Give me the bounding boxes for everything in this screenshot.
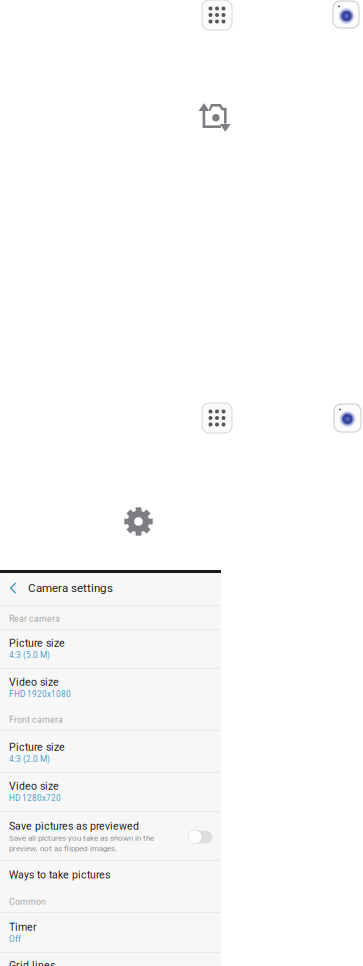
button[interactable]: Video size (0, 669, 221, 707)
staticText: Video size (9, 780, 59, 792)
staticText: Video size (9, 676, 59, 688)
staticText: Camera settings (28, 581, 113, 595)
button[interactable]: Ways to take pictures (0, 861, 221, 889)
staticText: Save pictures as previewed (9, 820, 139, 832)
staticText: HD 1280x720 (9, 793, 61, 803)
button[interactable]: Video size (0, 773, 221, 812)
staticText: 4:3 (5.0 M) (9, 650, 50, 660)
staticText: Common (9, 897, 46, 907)
staticText: Picture size (9, 741, 65, 753)
staticText: Picture size (9, 637, 65, 649)
button[interactable]: Save pictures as previewed (0, 812, 221, 861)
staticText: Timer (9, 921, 37, 933)
staticText: Grid lines (9, 959, 55, 966)
button[interactable]: Camera settings (0, 573, 221, 605)
staticText: Save all pictures you take as shown in t… (9, 833, 154, 843)
staticText: Rear camera (9, 614, 60, 624)
button[interactable]: Picture size (0, 630, 221, 669)
staticText: Off (9, 934, 21, 944)
staticText: preview, not as flipped images. (9, 844, 117, 853)
staticText: FHD 1920x1080 (9, 689, 71, 699)
staticText: 4:3 (2.0 M) (9, 754, 50, 764)
button[interactable]: Timer (0, 913, 221, 953)
button[interactable]: Picture size (0, 731, 221, 773)
button[interactable]: Grid lines (0, 953, 221, 966)
staticText: Ways to take pictures (9, 869, 110, 881)
staticText: Front camera (9, 715, 63, 725)
